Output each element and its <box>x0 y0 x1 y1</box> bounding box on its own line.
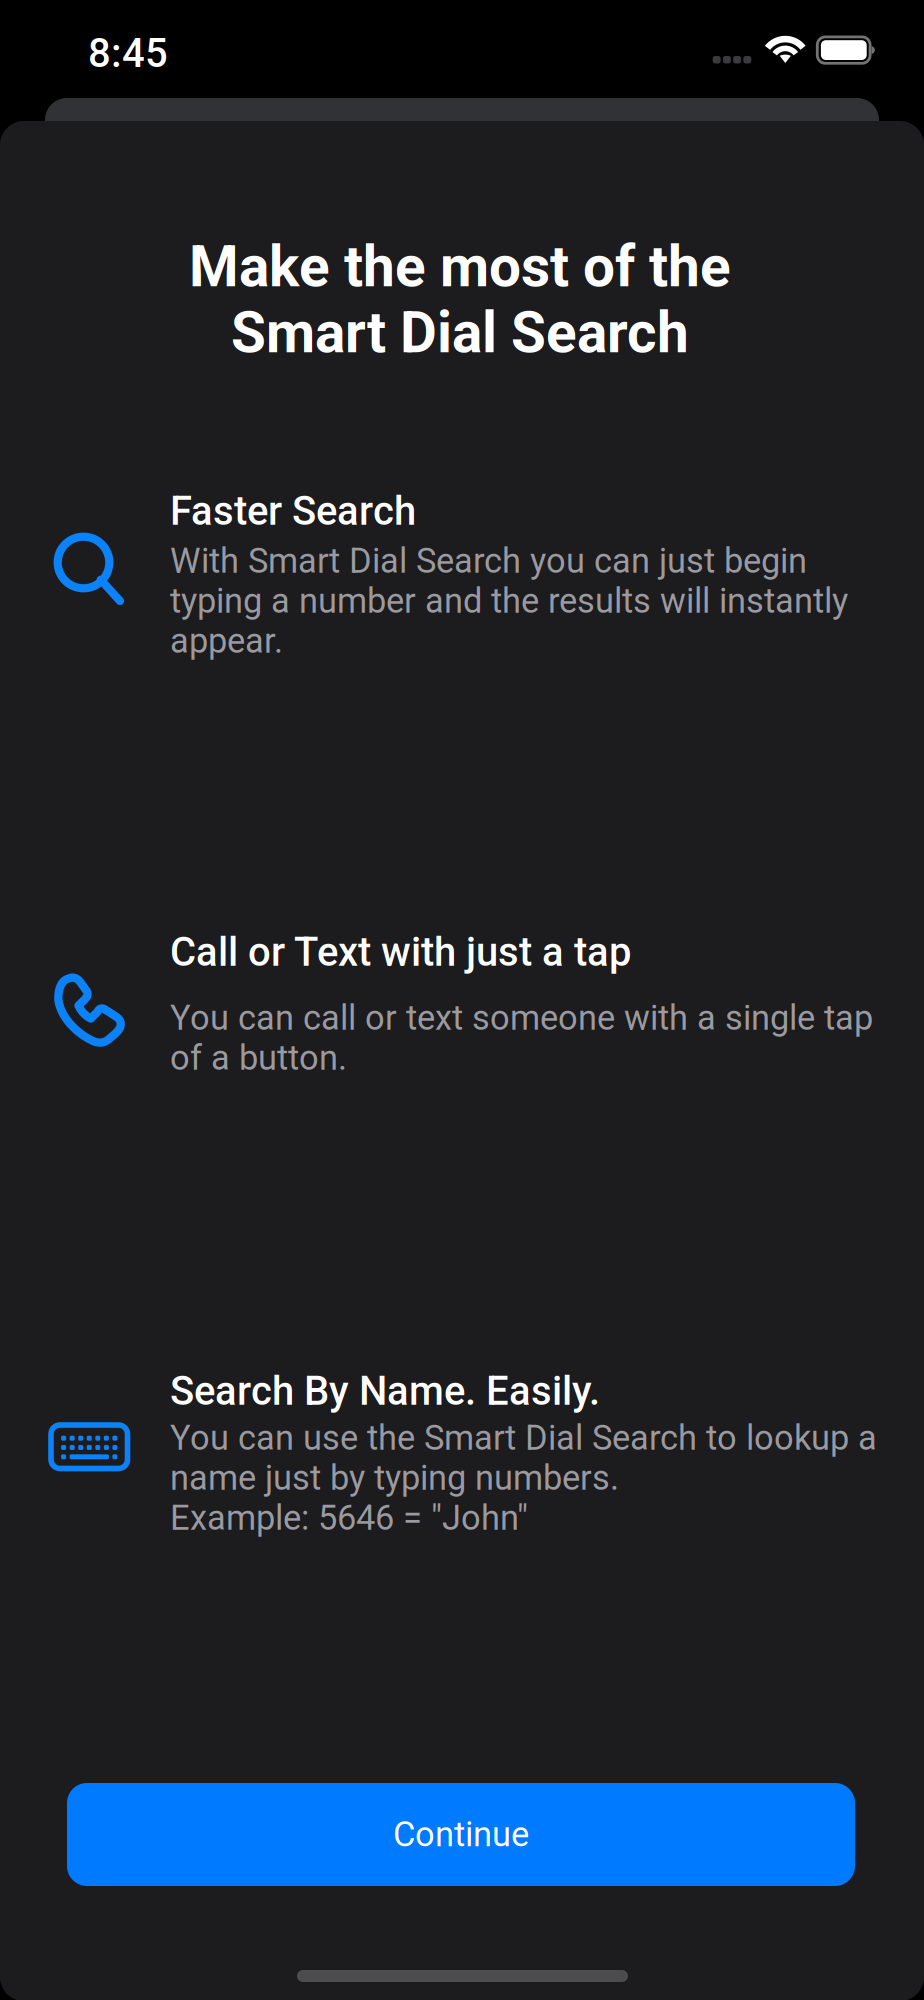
staticText: You can call or text someone with a sing… <box>170 998 873 1038</box>
staticText: Smart Dial Search <box>231 300 689 366</box>
staticText: appear. <box>170 621 283 661</box>
staticText: Search By Name. Easily. <box>170 1368 600 1414</box>
staticText: With Smart Dial Search you can just begi… <box>170 541 807 581</box>
button[interactable]: Continue <box>67 1783 855 1886</box>
staticText: name just by typing numbers. <box>170 1458 619 1498</box>
staticText: You can use the Smart Dial Search to loo… <box>170 1418 877 1458</box>
staticText: 8:45 <box>88 30 168 77</box>
staticText: typing a number and the results will ins… <box>170 581 848 621</box>
staticText: Continue <box>393 1814 529 1855</box>
staticText: Call or Text with just a tap <box>170 929 631 975</box>
staticText: of a button. <box>170 1038 347 1078</box>
staticText: Make the most of the <box>189 234 731 300</box>
staticText: Example: 5646 = "John" <box>170 1498 528 1538</box>
staticText: Faster Search <box>170 488 416 534</box>
